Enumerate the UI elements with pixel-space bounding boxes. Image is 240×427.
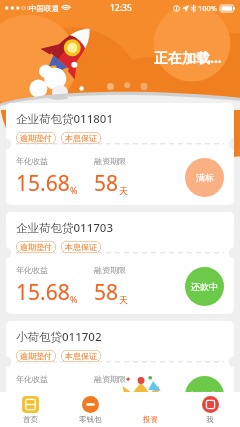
staticText: 零钱包 [79, 415, 102, 424]
staticText: 年化收益 [16, 265, 48, 275]
button[interactable]: 我 [180, 392, 240, 427]
staticText: 58 [94, 278, 119, 307]
staticText: 正在加载... [154, 48, 222, 67]
staticText: % [70, 184, 78, 196]
staticText: 企业荷包贷011801 [16, 111, 113, 127]
button[interactable]: 企业荷包贷011801 [6, 103, 234, 205]
staticText: 15.68 [16, 278, 70, 307]
other: 我 [202, 396, 219, 413]
button[interactable]: 投资 [120, 392, 180, 427]
staticText: 天 [119, 294, 128, 305]
staticText: 还款中 [191, 390, 218, 401]
staticText: 年化收益 [16, 374, 48, 384]
staticText: 我 [206, 415, 214, 424]
staticText: 12:35 [110, 2, 132, 14]
staticText: 本息保证 [65, 133, 97, 143]
button[interactable]: 还款中 [185, 267, 224, 306]
staticText: 融资期限 [94, 265, 126, 275]
staticText: 融资期限 [94, 156, 126, 166]
staticText: 15.68 [16, 169, 70, 198]
staticText: 融资期限 [94, 374, 126, 384]
staticText: 逾期垫付 [20, 133, 52, 143]
button[interactable]: 零钱包 [60, 392, 120, 427]
button[interactable]: 企业荷包贷011703 [6, 212, 234, 314]
staticText: 逾期垫付 [20, 351, 52, 361]
staticText: 58 [94, 169, 119, 198]
button[interactable]: 还款中 [185, 376, 224, 415]
other: 首页 [22, 396, 39, 413]
button[interactable]: 首页 [0, 392, 60, 427]
staticText: 中国联通 [29, 4, 59, 13]
staticText: 还款中 [191, 281, 218, 292]
staticText: 企业荷包贷011703 [16, 220, 113, 236]
staticText: % [70, 293, 78, 305]
staticText: 15.68 [16, 387, 70, 416]
other: 零钱包 [82, 396, 99, 413]
staticText: 满标 [196, 172, 214, 183]
staticText: 投资 [143, 415, 158, 424]
staticText: 逾期垫付 [20, 242, 52, 252]
staticText: 58 [94, 387, 119, 416]
staticText: 本息保证 [65, 351, 97, 361]
staticText: 本息保证 [65, 242, 97, 252]
staticText: 年化收益 [16, 156, 48, 166]
staticText: 小荷包贷011702 [16, 329, 102, 345]
staticText: 100% [198, 3, 218, 13]
button[interactable]: 满标 [185, 158, 224, 197]
button[interactable]: 小荷包贷011702 [6, 321, 234, 423]
staticText: 天 [119, 185, 128, 196]
staticText: 首页 [23, 415, 38, 424]
